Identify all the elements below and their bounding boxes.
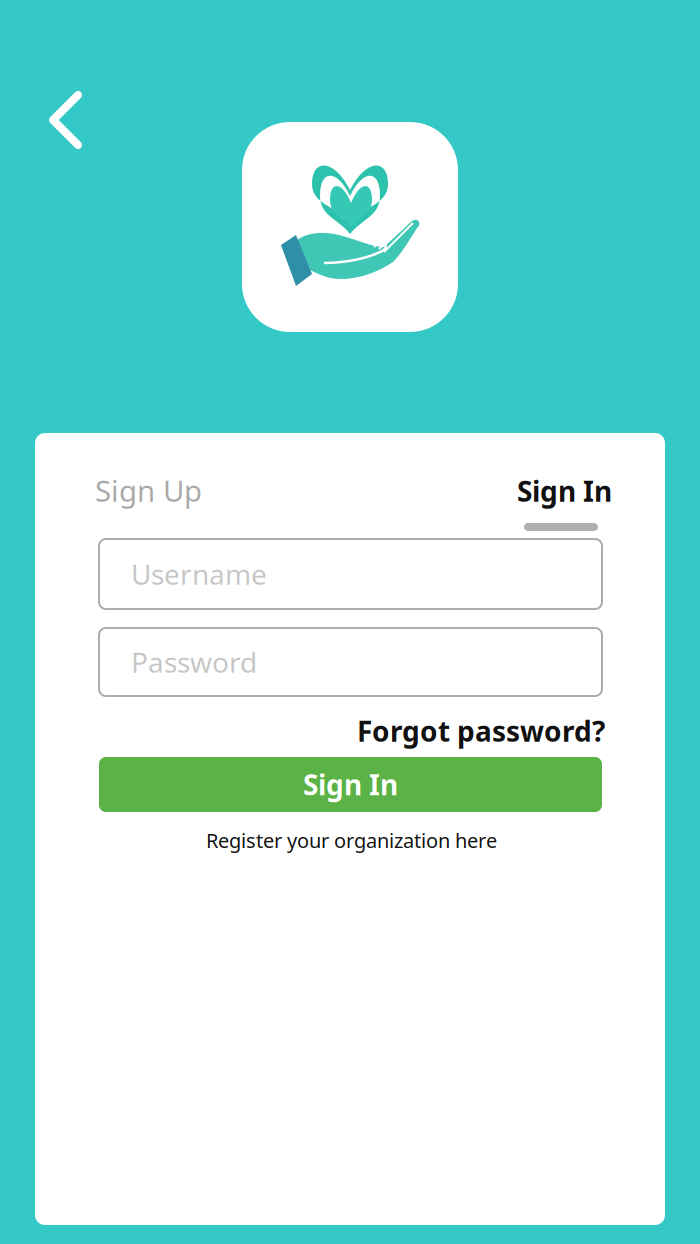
staticText: Password: [131, 643, 257, 681]
button[interactable]: Password: [99, 628, 602, 696]
button[interactable]: Username: [99, 539, 602, 609]
button[interactable]: Sign In: [517, 472, 627, 531]
staticText: Sign In: [303, 766, 398, 803]
button[interactable]: Forgot password?: [357, 712, 605, 750]
button[interactable]: Register your organization here: [206, 827, 497, 854]
staticText: Sign In: [517, 472, 612, 510]
staticText: Forgot password?: [357, 712, 605, 750]
button[interactable]: Back: [49, 91, 82, 149]
staticText: Username: [131, 555, 267, 593]
staticText: Sign Up: [95, 471, 202, 510]
staticText: Register your organization here: [206, 827, 497, 854]
button[interactable]: Sign Up: [95, 471, 202, 510]
button[interactable]: Sign In: [99, 757, 602, 812]
